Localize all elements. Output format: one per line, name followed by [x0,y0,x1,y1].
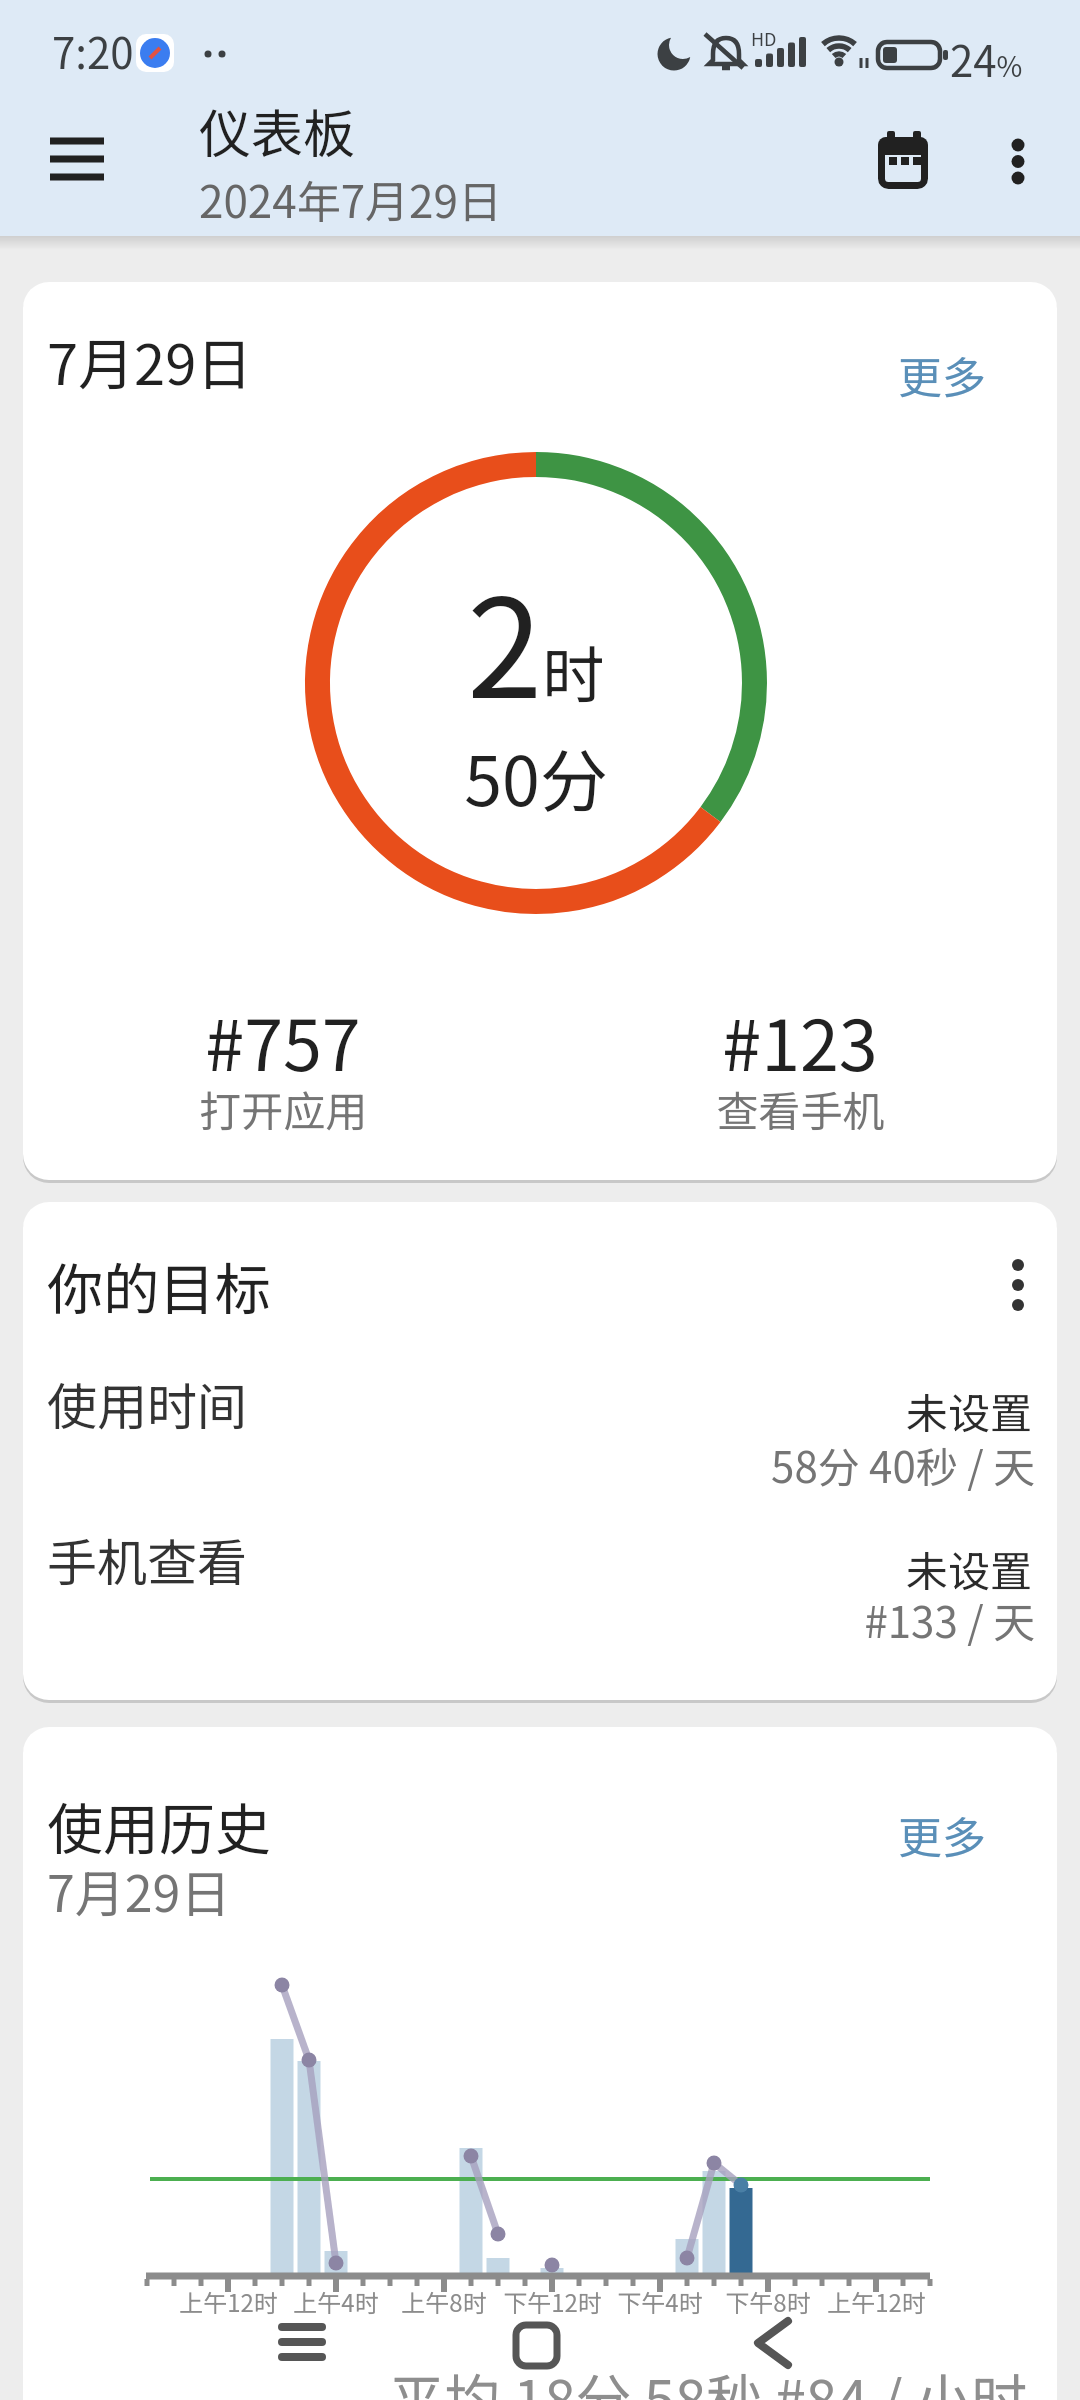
button[interactable] [23,1520,1057,1660]
button[interactable] [23,1360,1057,1500]
staticText: 更多 [898,1803,986,1867]
staticText: 7月29日 [47,320,253,401]
button[interactable] [255,2300,350,2395]
button[interactable] [23,1727,1057,2400]
button[interactable] [23,282,1057,1180]
button[interactable]: 更多 [862,1800,1022,1870]
staticText: 上午8时 [401,2284,487,2319]
staticText: 你的目标 [47,1245,271,1326]
staticText: 上午12时 [179,2284,278,2319]
staticText: #133 / 天 [864,1589,1035,1650]
staticText: 平均 18分 58秒 #84 / 小时 [388,2356,1027,2400]
button[interactable]: 更多 [862,340,1022,410]
staticText: 打开应用 [199,1078,368,1139]
staticText: HD [751,25,777,51]
staticText: 上午12时 [827,2284,926,2319]
staticText: 下午8时 [725,2284,811,2319]
button[interactable] [490,2300,585,2395]
button[interactable] [36,130,118,190]
staticText: 7:20 [52,20,134,81]
button[interactable] [725,2300,820,2395]
staticText: 手机查看 [47,1523,247,1595]
staticText: 未设置 [905,1538,1032,1599]
staticText: 未设置 [905,1380,1032,1441]
staticText: 查看手机 [716,1078,885,1139]
staticText: 2024年7月29日 [199,167,502,231]
staticText: 使用历史 [47,1785,271,1866]
staticText: 58分 40秒 / 天 [771,1434,1035,1495]
button[interactable] [985,1240,1051,1330]
staticText: 使用时间 [47,1367,247,1439]
staticText: #123 [722,990,878,1091]
staticText: 2时 [467,540,605,737]
staticText: 仪表板 [199,93,356,168]
staticText: 50分 [464,727,608,825]
staticText: #757 [205,990,361,1091]
button[interactable] [23,1202,1057,1700]
staticText: 7月29日 [47,1854,231,1926]
staticText: 下午12时 [503,2284,602,2319]
button[interactable] [985,120,1051,204]
staticText: 下午4时 [617,2284,703,2319]
button[interactable] [870,124,946,200]
staticText: 24% [950,28,1023,89]
staticText: 更多 [898,343,986,407]
staticText: 上午4时 [293,2284,379,2319]
